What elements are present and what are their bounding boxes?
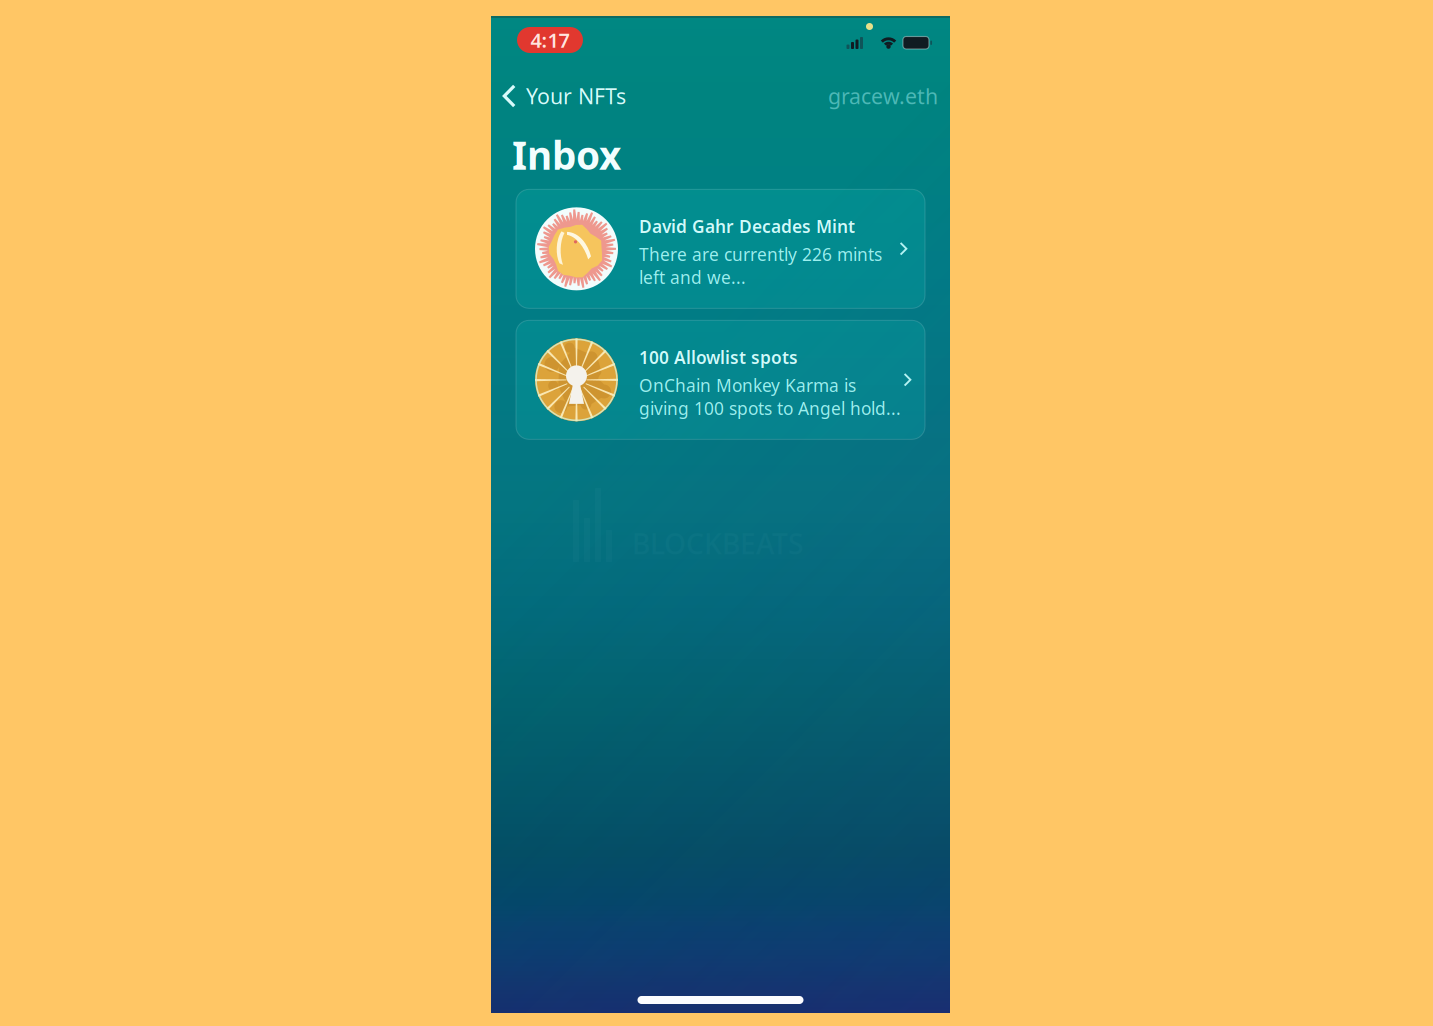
staticText: giving 100 spots to Angel hold... xyxy=(639,397,901,420)
button[interactable]: 100 Allowlist spots xyxy=(516,320,925,439)
staticText: David Gahr Decades Mint xyxy=(639,215,855,238)
button[interactable]: Your NFTs xyxy=(502,76,626,116)
staticText: Your NFTs xyxy=(526,82,626,110)
staticText: gracew.eth xyxy=(828,82,938,110)
button[interactable]: David Gahr Decades Mint xyxy=(516,189,925,308)
staticText: 4:17 xyxy=(530,27,569,53)
staticText: There are currently 226 mints xyxy=(639,243,882,266)
staticText: 100 Allowlist spots xyxy=(639,346,798,369)
staticText: left and we... xyxy=(639,266,746,289)
button[interactable]: gracew.eth xyxy=(828,76,938,116)
staticText: OnChain Monkey Karma is xyxy=(639,374,856,397)
staticText: Inbox xyxy=(512,129,621,180)
